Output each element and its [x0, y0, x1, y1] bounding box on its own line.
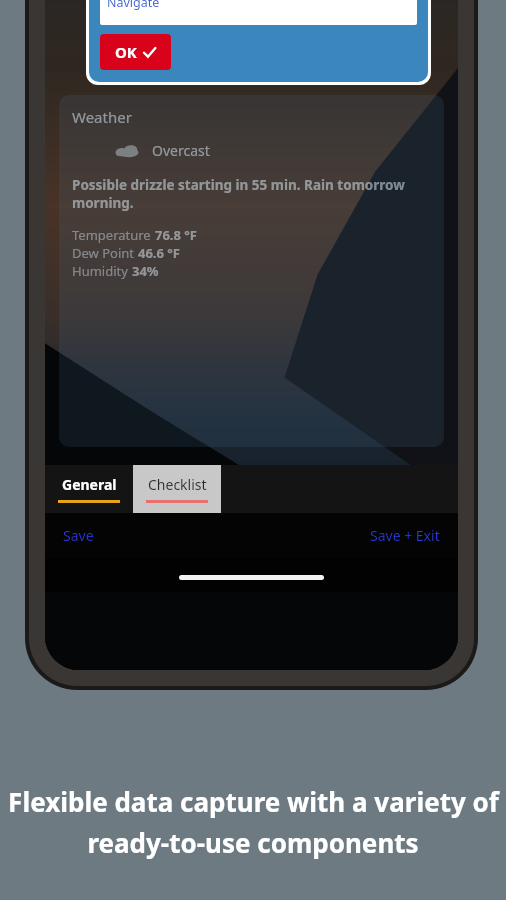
button[interactable]: General — [45, 465, 133, 513]
staticText: Overcast — [152, 141, 210, 160]
staticText: Humidity — [72, 262, 132, 280]
staticText: Temperature — [72, 226, 155, 244]
staticText: 76.8 °F — [155, 226, 197, 244]
staticText: ready-to-use components — [87, 825, 419, 860]
staticText: 46.6 °F — [138, 244, 180, 262]
button[interactable]: Navigate — [107, 0, 160, 11]
staticText: 34% — [132, 262, 159, 280]
staticText: Dew Point — [72, 244, 138, 262]
staticText: General — [62, 475, 117, 494]
staticText: Checklist — [148, 475, 207, 494]
button[interactable]: OK — [100, 34, 171, 70]
staticText: Possible drizzle starting in 55 min. Rai… — [72, 176, 431, 212]
staticText: OK — [115, 42, 137, 62]
button[interactable]: Save + Exit — [366, 522, 444, 549]
button[interactable]: Weather — [59, 95, 444, 447]
staticText: Flexible data capture with a variety of — [8, 784, 499, 819]
button[interactable]: Checklist — [133, 465, 221, 513]
staticText: Weather — [72, 107, 132, 127]
button[interactable]: Save — [59, 522, 98, 549]
